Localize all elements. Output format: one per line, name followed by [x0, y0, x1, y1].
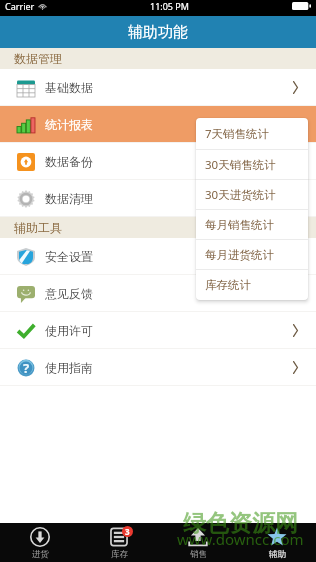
button[interactable]: 销售 [158, 523, 237, 562]
staticText: 辅助功能 [128, 23, 188, 42]
staticText: 使用许可 [45, 323, 93, 338]
staticText: 30天销售统计 [205, 157, 276, 173]
button[interactable]: 每月进货统计 [196, 240, 308, 270]
staticText: 库存统计 [205, 278, 251, 292]
staticText: 辅助工具 [14, 220, 62, 235]
button[interactable]: 使用许可 [0, 312, 316, 349]
button[interactable]: 辅助 [237, 523, 316, 562]
staticText: Carrier [5, 0, 35, 12]
button[interactable]: 进货 [0, 523, 79, 562]
button[interactable]: 基础数据 [0, 69, 316, 106]
button[interactable]: 7天销售统计 [196, 118, 308, 150]
button[interactable]: 辅助功能 [0, 16, 316, 48]
staticText: 数据清理 [45, 191, 93, 206]
button[interactable]: 3 [79, 523, 158, 562]
staticText: 安全设置 [45, 249, 93, 264]
staticText: 11:05 PM [150, 0, 189, 12]
staticText: 进货 [32, 549, 49, 560]
staticText: 统计报表 [45, 117, 93, 132]
button[interactable]: 数据清理 [0, 180, 316, 217]
staticText: 使用指南 [45, 360, 93, 375]
button[interactable]: ? [0, 349, 316, 386]
staticText: 销售 [190, 549, 207, 560]
button[interactable]: 统计报表 [0, 106, 316, 143]
staticText: 库存 [111, 549, 128, 560]
button[interactable]: 库存统计 [196, 270, 308, 300]
button[interactable]: 数据备份 [0, 143, 316, 180]
staticText: 辅助 [269, 549, 286, 560]
staticText: 数据备份 [45, 154, 93, 169]
button[interactable]: 30天进货统计 [196, 180, 308, 210]
staticText: 数据管理 [14, 51, 62, 66]
button[interactable]: 安全设置 [0, 238, 316, 275]
staticText: 7天销售统计 [205, 126, 270, 142]
staticText: ? [23, 359, 30, 377]
staticText: 绿色资源网 [183, 509, 298, 538]
button[interactable]: 意见反馈 [0, 275, 316, 312]
staticText: 3 [125, 526, 130, 537]
button[interactable]: 30天销售统计 [196, 150, 308, 180]
button[interactable]: 每月销售统计 [196, 210, 308, 240]
staticText: 30天进货统计 [205, 187, 276, 203]
staticText: 意见反馈 [45, 286, 93, 301]
staticText: www.downcc.com [177, 529, 304, 549]
staticText: 每月销售统计 [205, 218, 274, 232]
staticText: 基础数据 [45, 80, 93, 95]
staticText: 每月进货统计 [205, 248, 274, 262]
